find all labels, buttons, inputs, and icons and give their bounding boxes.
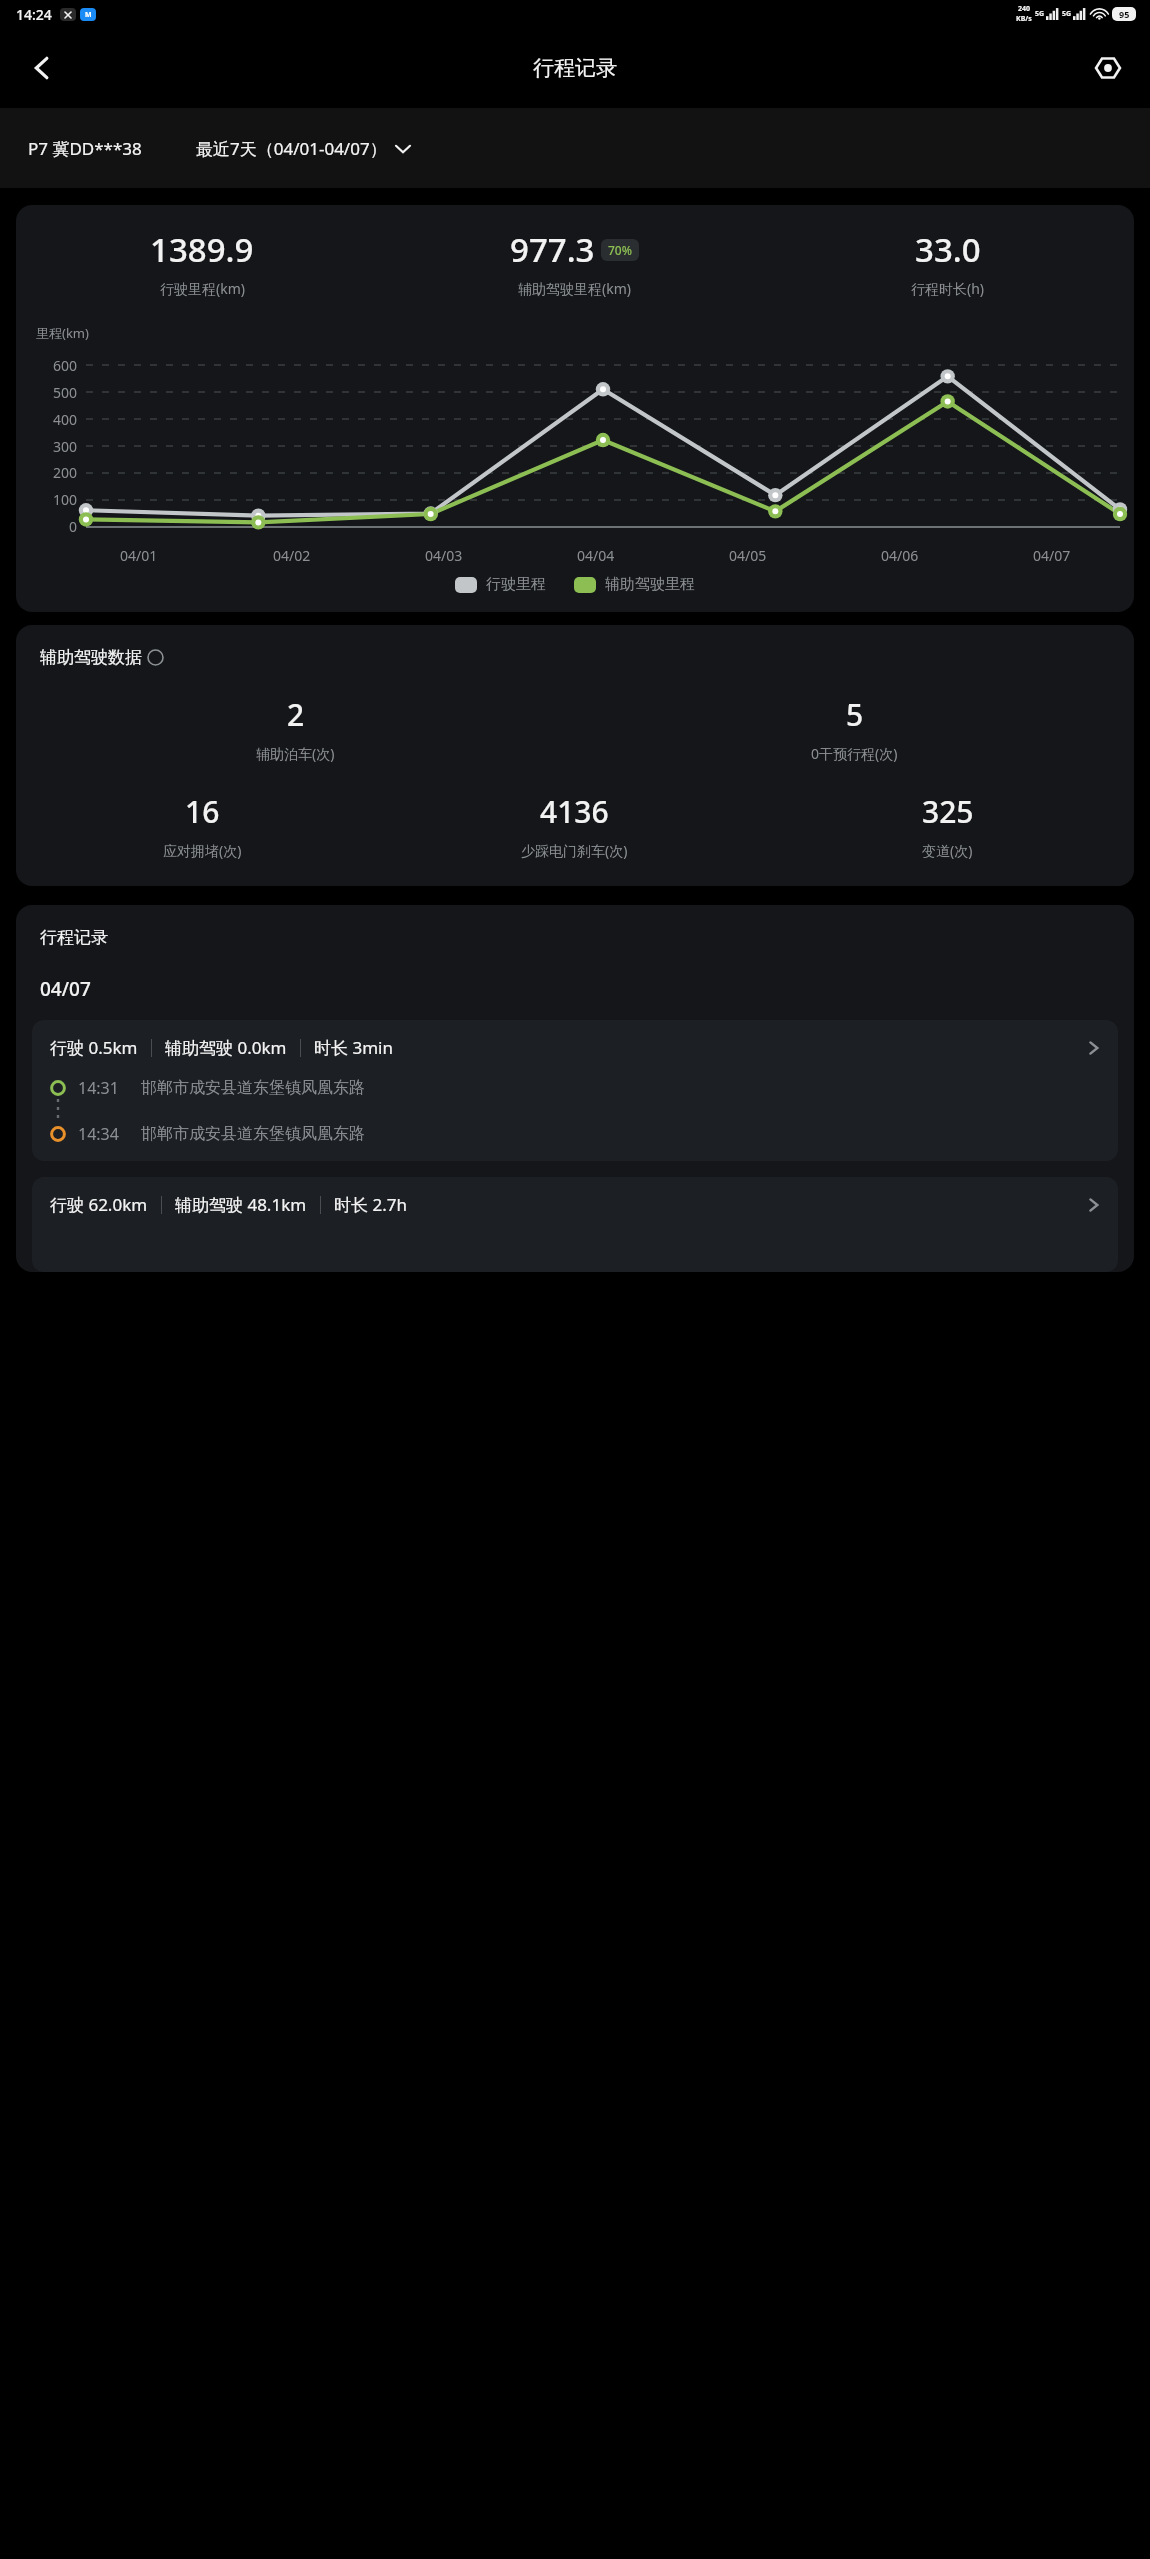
staticText: 100 [53,490,78,509]
staticText: 0 [69,517,78,536]
staticText: 04/07 [40,976,91,1002]
staticText: 辅助泊车(次) [256,744,335,763]
staticText: 04/01 [120,546,158,565]
staticText: 5G [1062,9,1072,19]
staticText: 行驶里程(km) [160,279,245,298]
staticText: 2 [287,694,305,735]
staticText: 邯郸市成安县道东堡镇凤凰东路 [141,1124,365,1144]
staticText: 最近7天（04/01-04/07） [196,137,387,160]
staticText: 应对拥堵(次) [163,841,242,860]
button[interactable]: Back [16,42,68,94]
staticText: 14:31 [78,1077,119,1099]
button[interactable]: Settings [1082,42,1134,94]
staticText: 04/02 [273,546,311,565]
staticText: 33.0 [915,227,981,272]
staticText: 04/06 [881,546,919,565]
staticText: 95 [1119,8,1130,20]
staticText: 0干预行程(次) [811,744,898,763]
staticText: 240 [1018,4,1031,14]
button[interactable]: 最近7天（04/01-04/07） [192,131,415,166]
staticText: 邯郸市成安县道东堡镇凤凰东路 [141,1078,365,1098]
staticText: 04/07 [1033,546,1071,565]
staticText: M [85,10,92,20]
staticText: 400 [53,410,78,429]
staticText: 辅助驾驶 0.0km [165,1036,287,1059]
staticText: 4136 [540,791,609,832]
staticText: 辅助驾驶 48.1km [175,1193,307,1216]
staticText: 977.3 [510,227,595,272]
staticText: 200 [53,463,78,482]
staticText: 时长 3min [314,1036,393,1059]
button[interactable]: 行驶 0.5km [32,1020,1118,1161]
staticText: 5 [846,694,864,735]
staticText: 行程记录 [533,55,617,81]
staticText: 300 [53,437,78,456]
staticText: 1389.9 [150,227,254,272]
staticText: 5G [1035,9,1045,19]
staticText: 里程(km) [36,324,89,342]
button[interactable]: 1389.9 [16,205,1134,612]
staticText: 行驶 62.0km [50,1193,148,1216]
staticText: 时长 2.7h [334,1193,407,1216]
staticText: 行驶里程 [486,575,546,594]
button[interactable]: 行驶 62.0km [32,1177,1118,1272]
staticText: 行程时长(h) [911,279,985,298]
staticText: 04/04 [577,546,615,565]
staticText: 04/03 [425,546,463,565]
staticText: KB/s [1016,14,1032,24]
staticText: 辅助驾驶数据 [40,647,142,668]
staticText: 14:24 [16,5,52,24]
staticText: 16 [185,791,220,832]
button[interactable]: 辅助驾驶数据 [16,625,1134,886]
staticText: 04/05 [729,546,767,565]
staticText: 变道(次) [922,841,973,860]
staticText: 70% [608,242,632,258]
staticText: 行驶 0.5km [50,1036,138,1059]
staticText: 600 [53,356,78,375]
staticText: 少踩电门刹车(次) [521,841,628,860]
staticText: 辅助驾驶里程(km) [518,279,631,298]
staticText: 辅助驾驶里程 [605,575,695,594]
staticText: 行程记录 [40,927,108,948]
staticText: P7 冀DD***38 [28,137,142,160]
staticText: 325 [922,791,974,832]
staticText: 500 [53,383,78,402]
staticText: 14:34 [78,1123,119,1145]
